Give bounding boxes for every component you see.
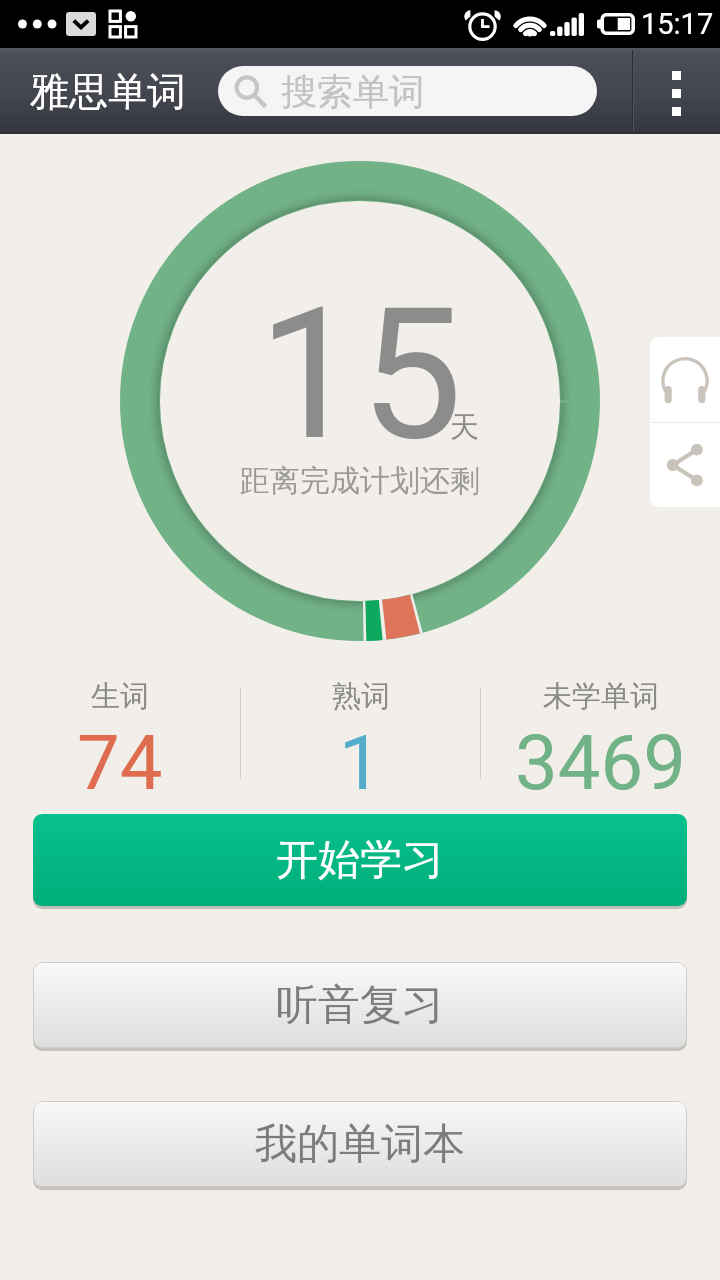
staticText: 生词 (91, 678, 149, 715)
button[interactable]: 听音复习 (33, 962, 687, 1048)
button[interactable]: Listen (650, 337, 720, 422)
button[interactable]: 未学单词 (481, 678, 720, 798)
staticText: 雅思单词 (30, 67, 186, 116)
staticText: 熟词 (332, 678, 390, 715)
button[interactable]: 开始学习 (33, 814, 687, 906)
staticText: 未学单词 (543, 678, 659, 715)
button[interactable]: 搜索单词 (218, 66, 597, 116)
staticText: 开始学习 (276, 834, 444, 887)
button[interactable]: 生词 (0, 678, 240, 798)
button[interactable]: 熟词 (241, 678, 480, 798)
button[interactable]: Share (650, 423, 720, 507)
staticText: 搜索单词 (281, 69, 425, 114)
staticText: 天 (450, 409, 479, 446)
staticText: 15:17 (641, 7, 714, 41)
staticText: 15 (258, 268, 463, 481)
button[interactable]: 我的单词本 (33, 1101, 687, 1187)
staticText: 3469 (515, 718, 686, 798)
staticText: 我的单词本 (255, 1118, 465, 1171)
button[interactable]: More options (633, 48, 720, 134)
staticText: 距离完成计划还剩 (240, 462, 480, 500)
staticText: 听音复习 (276, 979, 444, 1032)
staticText: 1 (339, 718, 382, 798)
staticText: 74 (77, 718, 163, 798)
